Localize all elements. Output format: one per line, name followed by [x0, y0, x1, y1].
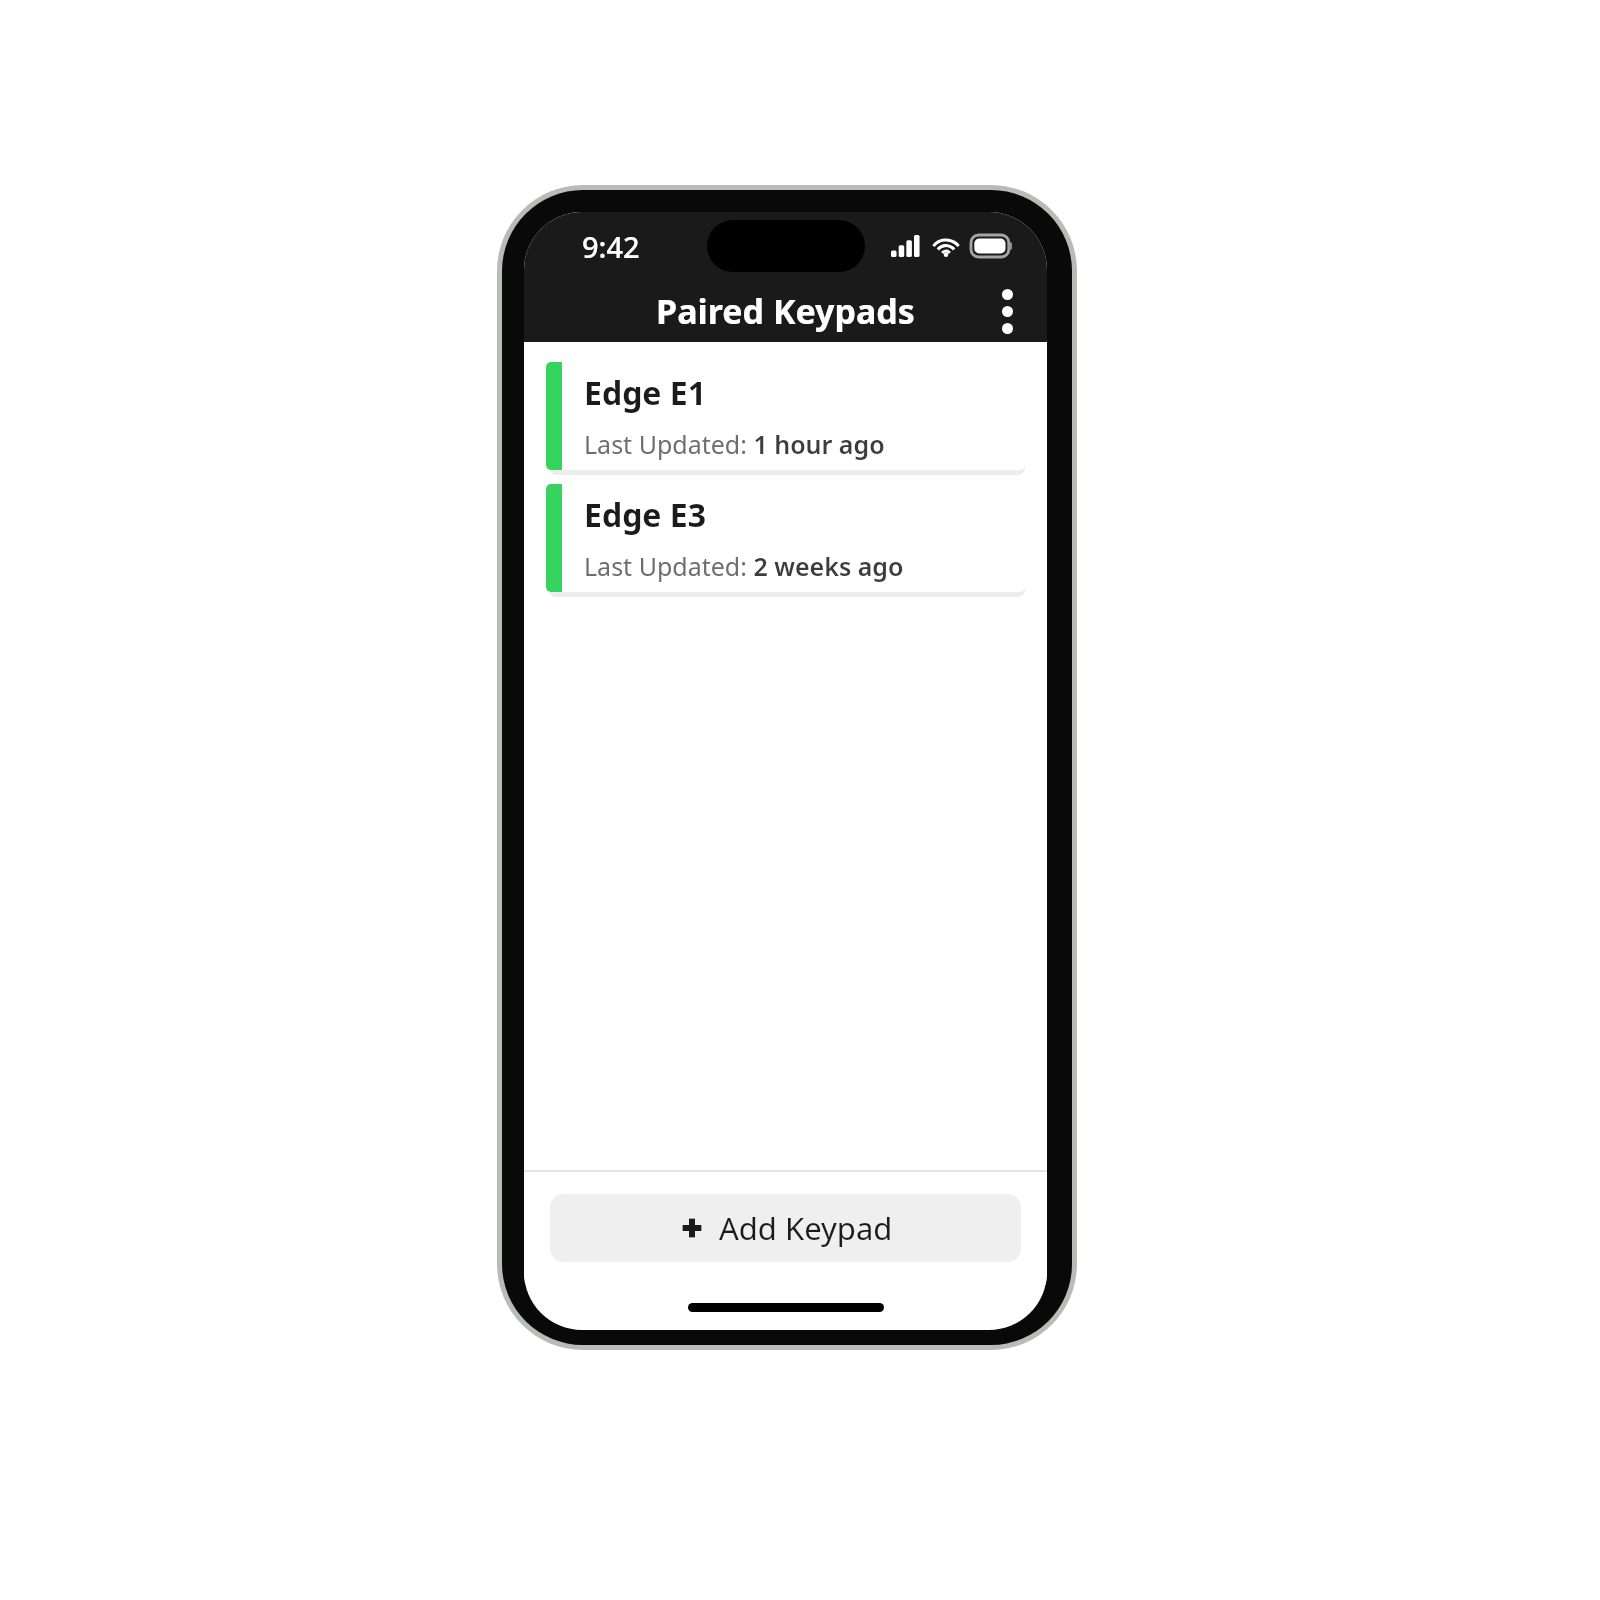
- button[interactable]: Add Keypad: [550, 1194, 1021, 1262]
- staticText: Last Updated: 1 hour ago: [584, 427, 885, 461]
- staticText: Add Keypad: [719, 1207, 893, 1249]
- staticText: Edge E3: [584, 493, 707, 537]
- staticText: Edge E1: [584, 371, 707, 415]
- button[interactable]: More options: [979, 283, 1035, 339]
- button[interactable]: Edge E3: [546, 484, 1025, 592]
- staticText: Paired Keypads: [656, 288, 915, 334]
- button[interactable]: Edge E1: [546, 362, 1025, 470]
- staticText: Last Updated: 2 weeks ago: [584, 549, 904, 583]
- staticText: 9:42: [582, 227, 640, 266]
